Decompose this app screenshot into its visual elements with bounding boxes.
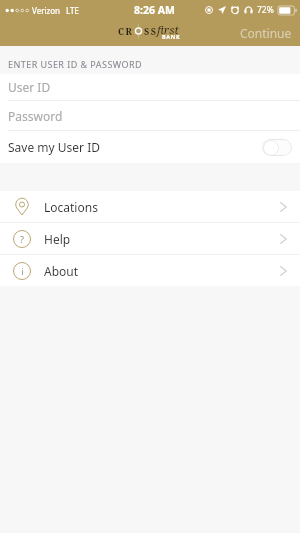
staticText: User ID: [8, 79, 51, 95]
staticText: Locations: [44, 199, 98, 215]
staticText: LTE: [66, 5, 79, 16]
staticText: ENTER USER ID & PASSWORD: [8, 58, 143, 70]
staticText: Continue: [240, 25, 292, 41]
staticText: SS: [144, 25, 158, 37]
staticText: CR: [118, 25, 134, 37]
staticText: About: [44, 263, 79, 279]
staticText: Verizon: [32, 5, 61, 16]
staticText: Save my User ID: [8, 139, 100, 155]
staticText: Help: [44, 231, 71, 247]
button[interactable]: Save my User ID: [0, 131, 300, 163]
staticText: BANK: [162, 33, 181, 40]
staticText: first: [157, 22, 179, 38]
button[interactable]: Password: [0, 101, 300, 130]
staticText: i: [21, 265, 24, 277]
staticText: 72%: [257, 4, 274, 16]
staticText: ?: [20, 233, 24, 245]
staticText: Password: [8, 108, 63, 124]
staticText: 8:26 AM: [134, 3, 175, 17]
button[interactable]: i: [0, 255, 300, 286]
other: Save my User ID toggle: [262, 139, 292, 156]
button[interactable]: Continue: [232, 20, 300, 46]
button[interactable]: User ID: [0, 74, 300, 100]
button[interactable]: ?: [0, 223, 300, 254]
button[interactable]: Locations: [0, 191, 300, 222]
